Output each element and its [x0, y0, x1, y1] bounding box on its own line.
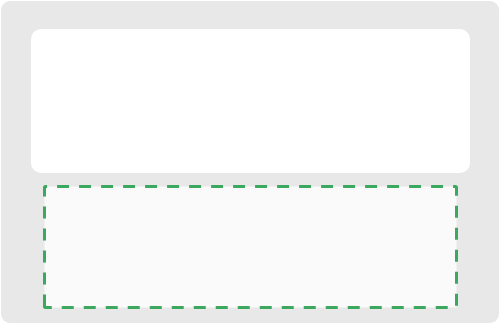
- button[interactable]: Drop zone, empty: [43, 185, 458, 309]
